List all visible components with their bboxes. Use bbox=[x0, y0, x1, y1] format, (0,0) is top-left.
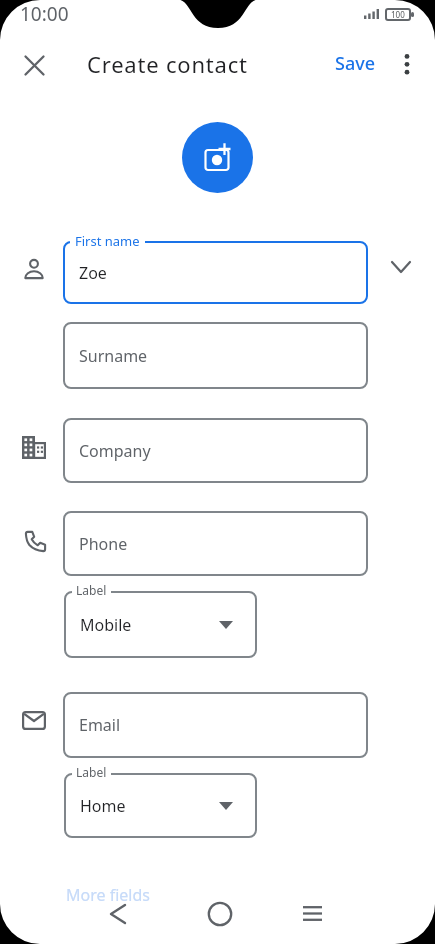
staticText: 10:00 bbox=[20, 1, 69, 27]
button[interactable]: Save bbox=[330, 46, 381, 81]
staticText: Surname bbox=[79, 345, 148, 367]
button[interactable] bbox=[208, 902, 232, 926]
staticText: More fields bbox=[66, 884, 150, 906]
button[interactable]: Mobile bbox=[64, 591, 257, 658]
button[interactable] bbox=[109, 904, 127, 924]
staticText: Home bbox=[80, 795, 126, 817]
staticText: Label bbox=[76, 582, 107, 598]
staticText: First name bbox=[75, 232, 140, 250]
button[interactable]: Phone bbox=[63, 511, 368, 576]
staticText: Company bbox=[79, 440, 151, 462]
button[interactable] bbox=[391, 261, 411, 273]
staticText: Create contact bbox=[87, 49, 248, 79]
button[interactable] bbox=[25, 56, 44, 75]
staticText: Save bbox=[335, 51, 376, 76]
button[interactable] bbox=[400, 54, 414, 75]
staticText: Zoe bbox=[79, 262, 107, 284]
staticText: Email bbox=[79, 714, 121, 736]
button[interactable] bbox=[182, 122, 253, 193]
button[interactable] bbox=[303, 906, 322, 921]
staticText: Mobile bbox=[80, 614, 132, 636]
button[interactable]: Zoe bbox=[63, 241, 368, 304]
button[interactable]: Company bbox=[63, 418, 368, 483]
button[interactable]: Surname bbox=[63, 322, 368, 389]
staticText: 100 bbox=[391, 9, 405, 20]
staticText: Phone bbox=[79, 533, 128, 555]
button[interactable]: Email bbox=[63, 692, 368, 758]
staticText: Label bbox=[76, 764, 107, 780]
button[interactable]: Home bbox=[64, 773, 257, 838]
button[interactable]: More fields bbox=[66, 884, 150, 906]
